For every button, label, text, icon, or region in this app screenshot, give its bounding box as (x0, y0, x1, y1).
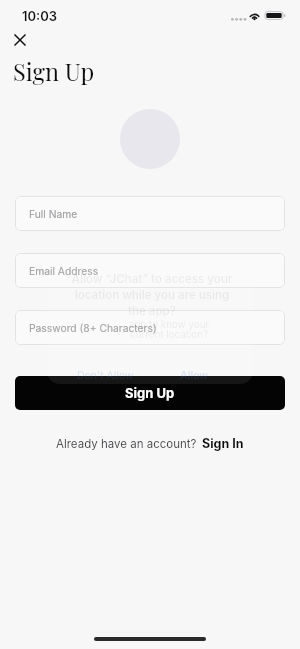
staticText: app to know your current location? (118, 319, 220, 340)
staticText: Sign Up (125, 385, 175, 401)
button[interactable]: Close (9, 29, 31, 51)
button[interactable]: Add profile photo (120, 109, 180, 169)
staticText: 10:03 (22, 8, 58, 24)
staticText: Full Name (29, 208, 78, 220)
staticText: Email Address (29, 265, 99, 277)
staticText: Sign Up (13, 56, 95, 87)
staticText: Don't Allow (77, 369, 134, 382)
button[interactable]: Sign In (202, 436, 244, 451)
button[interactable]: Full Name (15, 196, 285, 231)
button[interactable]: Sign Up (15, 376, 285, 410)
button[interactable]: Password (8+ Characters) (15, 310, 285, 345)
staticText: Already have an account? (56, 437, 197, 451)
staticText: Password (8+ Characters) (29, 322, 157, 334)
button[interactable]: Email Address (15, 253, 285, 288)
staticText: Allow (180, 369, 209, 382)
staticText: Allow “JChat” to access your location wh… (64, 272, 240, 317)
staticText: Sign In (202, 436, 244, 451)
